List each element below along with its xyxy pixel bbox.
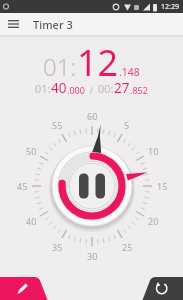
staticText: 01: (35, 81, 51, 96)
staticText: / (85, 84, 98, 96)
button[interactable] (52, 146, 132, 226)
staticText: 12 (77, 38, 119, 87)
staticText: Timer 3 (33, 17, 73, 32)
button[interactable] (0, 13, 26, 35)
staticText: 01: (43, 50, 77, 83)
staticText: 20 (148, 215, 159, 227)
staticText: 25 (122, 241, 133, 253)
staticText: .852 (130, 84, 148, 96)
button[interactable] (125, 276, 183, 300)
staticText: 35 (52, 241, 63, 253)
staticText: 30 (87, 250, 98, 262)
staticText: 55 (52, 119, 63, 131)
staticText: 60 (87, 110, 98, 122)
staticText: 45 (17, 180, 28, 192)
staticText: 40 (26, 215, 37, 227)
staticText: .148 (119, 65, 140, 79)
staticText: 50 (26, 145, 37, 157)
button[interactable] (0, 276, 58, 300)
staticText: 10 (148, 145, 159, 157)
staticText: 00: (98, 81, 114, 96)
staticText: 40 (51, 79, 67, 97)
staticText: 15 (157, 180, 168, 192)
staticText: 27 (114, 79, 130, 97)
staticText: 5 (124, 119, 130, 131)
staticText: 12:29 (161, 2, 179, 12)
staticText: .000 (67, 84, 85, 96)
